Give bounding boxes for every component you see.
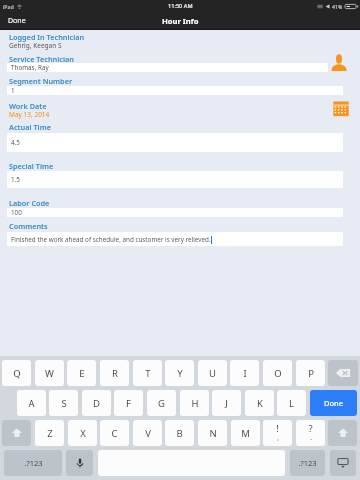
button[interactable]: S [49,390,78,416]
button[interactable]: Dictation [66,450,93,476]
staticText: Labor Code [9,198,50,208]
staticText: May 13, 2014 [9,110,50,119]
staticText: I [243,367,247,380]
button[interactable]: Y [165,360,194,386]
button[interactable]: Select technician [331,54,347,71]
button[interactable]: V [133,420,162,446]
staticText: P [308,367,314,380]
button[interactable]: M [231,420,260,446]
staticText: S [61,397,67,410]
button[interactable]: 1.5 [7,171,343,188]
button[interactable]: 100 [7,208,343,217]
button[interactable]: ? [296,420,325,446]
staticText: ! [276,422,279,435]
staticText: V [145,427,151,440]
button[interactable]: Backspace [328,360,358,386]
button[interactable]: .?123 [4,450,62,476]
staticText: L [289,397,294,410]
staticText: , [277,433,279,442]
button[interactable]: A [17,390,46,416]
staticText: Service Technician [9,54,74,64]
staticText: Work Date [9,101,47,111]
staticText: iPad [3,3,14,10]
button[interactable]: N [198,420,227,446]
button[interactable]: U [198,360,227,386]
staticText: W [45,367,54,380]
button[interactable]: X [68,420,97,446]
button[interactable]: ! [263,420,292,446]
button[interactable]: O [263,360,292,386]
button[interactable]: D [82,390,111,416]
button[interactable]: 4.5 [7,133,343,152]
staticText: Actual Time [9,122,51,132]
staticText: U [209,367,216,380]
staticText: Hour Info [162,16,199,26]
button[interactable]: H [180,390,209,416]
staticText: X [80,427,86,440]
button[interactable]: Thomas, Ray [7,63,328,72]
button[interactable]: Z [35,420,64,446]
staticText: D [93,397,100,410]
button[interactable]: .?123 [290,450,325,476]
staticText: J [225,397,228,410]
staticText: B [176,427,183,440]
staticText: 1 [11,86,15,95]
staticText: G [158,397,165,410]
staticText: C [111,427,118,440]
staticText: N [209,427,217,440]
button[interactable]: Shift [328,420,357,446]
staticText: M [241,427,250,440]
staticText: Finished the work ahead of schedule, and… [11,235,211,244]
button[interactable]: T [133,360,162,386]
button[interactable]: 1 [7,86,343,95]
button[interactable]: R [100,360,129,386]
button[interactable]: K [245,390,274,416]
staticText: Q [13,367,21,380]
staticText: Segment Number [9,76,73,86]
staticText: ? [308,422,313,435]
staticText: R [112,367,118,380]
button[interactable]: E [67,360,96,386]
button[interactable]: W [35,360,64,386]
button[interactable]: I [230,360,259,386]
button[interactable]: Done [0,13,34,29]
button[interactable]: L [277,390,306,416]
staticText: Comments [9,221,48,231]
button[interactable]: Hide keyboard [330,450,356,476]
staticText: Special Time [9,161,54,171]
button[interactable]: G [147,390,176,416]
staticText: 4.5 [11,138,20,147]
staticText: A [28,397,35,410]
staticText: 11:50 AM [168,2,193,10]
staticText: Thomas, Ray [11,63,49,72]
staticText: Done [8,16,26,26]
staticText: F [126,397,131,410]
button[interactable]: Q [2,360,31,386]
button[interactable]: B [165,420,194,446]
staticText: Logged In Technician [9,32,85,42]
button[interactable]: J [212,390,241,416]
button[interactable]: F [114,390,143,416]
button[interactable]: P [296,360,325,386]
staticText: Y [177,367,183,380]
staticText: E [79,367,85,380]
staticText: 1.5 [11,175,20,184]
staticText: 100 [11,208,22,217]
staticText: . [310,433,312,442]
staticText: Z [47,427,53,440]
staticText: Gehrig, Keegan S [9,41,62,50]
staticText: K [257,397,263,410]
staticText: O [274,367,282,380]
staticText: T [145,367,151,380]
button[interactable]: Shift [2,420,31,446]
staticText: .?123 [24,458,43,468]
button[interactable]: C [100,420,129,446]
staticText: Done [324,398,343,408]
button[interactable]: Finished the work ahead of schedule, and… [7,232,343,246]
staticText: 41% [332,3,343,10]
button[interactable]: Pick date [333,101,349,117]
button[interactable]: Done [310,390,357,416]
staticText: H [191,397,199,410]
staticText: .?123 [298,458,317,468]
